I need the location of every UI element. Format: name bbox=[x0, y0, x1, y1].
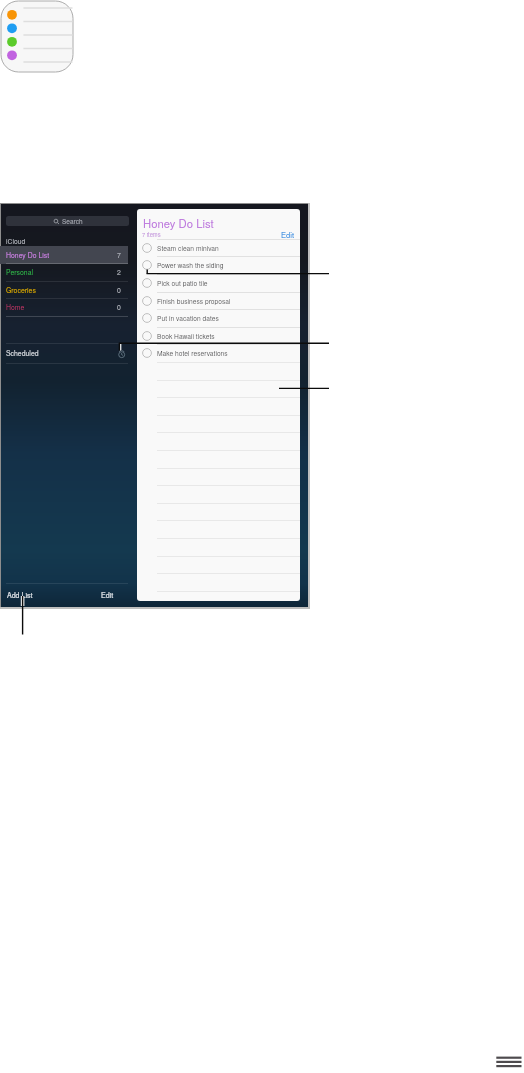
staticText: Make hotel reservations bbox=[157, 348, 228, 358]
button[interactable]: Scheduled bbox=[0, 343, 135, 363]
staticText: Home bbox=[6, 302, 25, 312]
staticText: 2 bbox=[117, 267, 121, 277]
staticText: Steam clean minivan bbox=[157, 243, 219, 253]
staticText: Pick out patio tile bbox=[157, 278, 208, 288]
staticText: Honey Do List bbox=[6, 250, 50, 260]
staticText: Scheduled bbox=[6, 348, 39, 358]
staticText: Honey Do List bbox=[143, 215, 214, 231]
button[interactable]: Power wash the siding bbox=[137, 256, 300, 274]
staticText: Edit bbox=[281, 229, 295, 240]
staticText: Edit bbox=[101, 590, 114, 600]
staticText: 7 items bbox=[142, 230, 161, 238]
staticText: Power wash the siding bbox=[157, 260, 224, 270]
staticText: Add List bbox=[7, 590, 33, 600]
button[interactable]: Book Hawaii tickets bbox=[137, 327, 300, 345]
button[interactable]: Make hotel reservations bbox=[137, 344, 300, 362]
button[interactable]: Add List bbox=[7, 590, 33, 600]
other: Scheduled bbox=[117, 349, 126, 358]
staticText: 7 bbox=[117, 250, 121, 260]
button[interactable]: Groceries bbox=[0, 281, 128, 299]
button[interactable]: Personal bbox=[0, 263, 128, 281]
button[interactable]: Home bbox=[0, 298, 128, 316]
button[interactable]: Search bbox=[6, 216, 129, 226]
staticText: iCloud bbox=[6, 236, 26, 246]
button[interactable]: Edit bbox=[270, 228, 295, 240]
button[interactable]: Edit bbox=[101, 590, 114, 600]
button[interactable]: Put in vacation dates bbox=[137, 309, 300, 327]
staticText: 0 bbox=[117, 302, 121, 312]
staticText: Finish business proposal bbox=[157, 296, 231, 306]
staticText: Put in vacation dates bbox=[157, 313, 219, 323]
button[interactable]: Steam clean minivan bbox=[137, 239, 300, 257]
staticText: Search bbox=[62, 217, 83, 226]
staticText: Groceries bbox=[6, 285, 36, 295]
button[interactable]: Honey Do List bbox=[0, 246, 128, 264]
button[interactable]: Pick out patio tile bbox=[137, 274, 300, 292]
staticText: 0 bbox=[117, 285, 121, 295]
staticText: Personal bbox=[6, 267, 34, 277]
staticText: Book Hawaii tickets bbox=[157, 331, 215, 341]
button[interactable]: Finish business proposal bbox=[137, 292, 300, 310]
